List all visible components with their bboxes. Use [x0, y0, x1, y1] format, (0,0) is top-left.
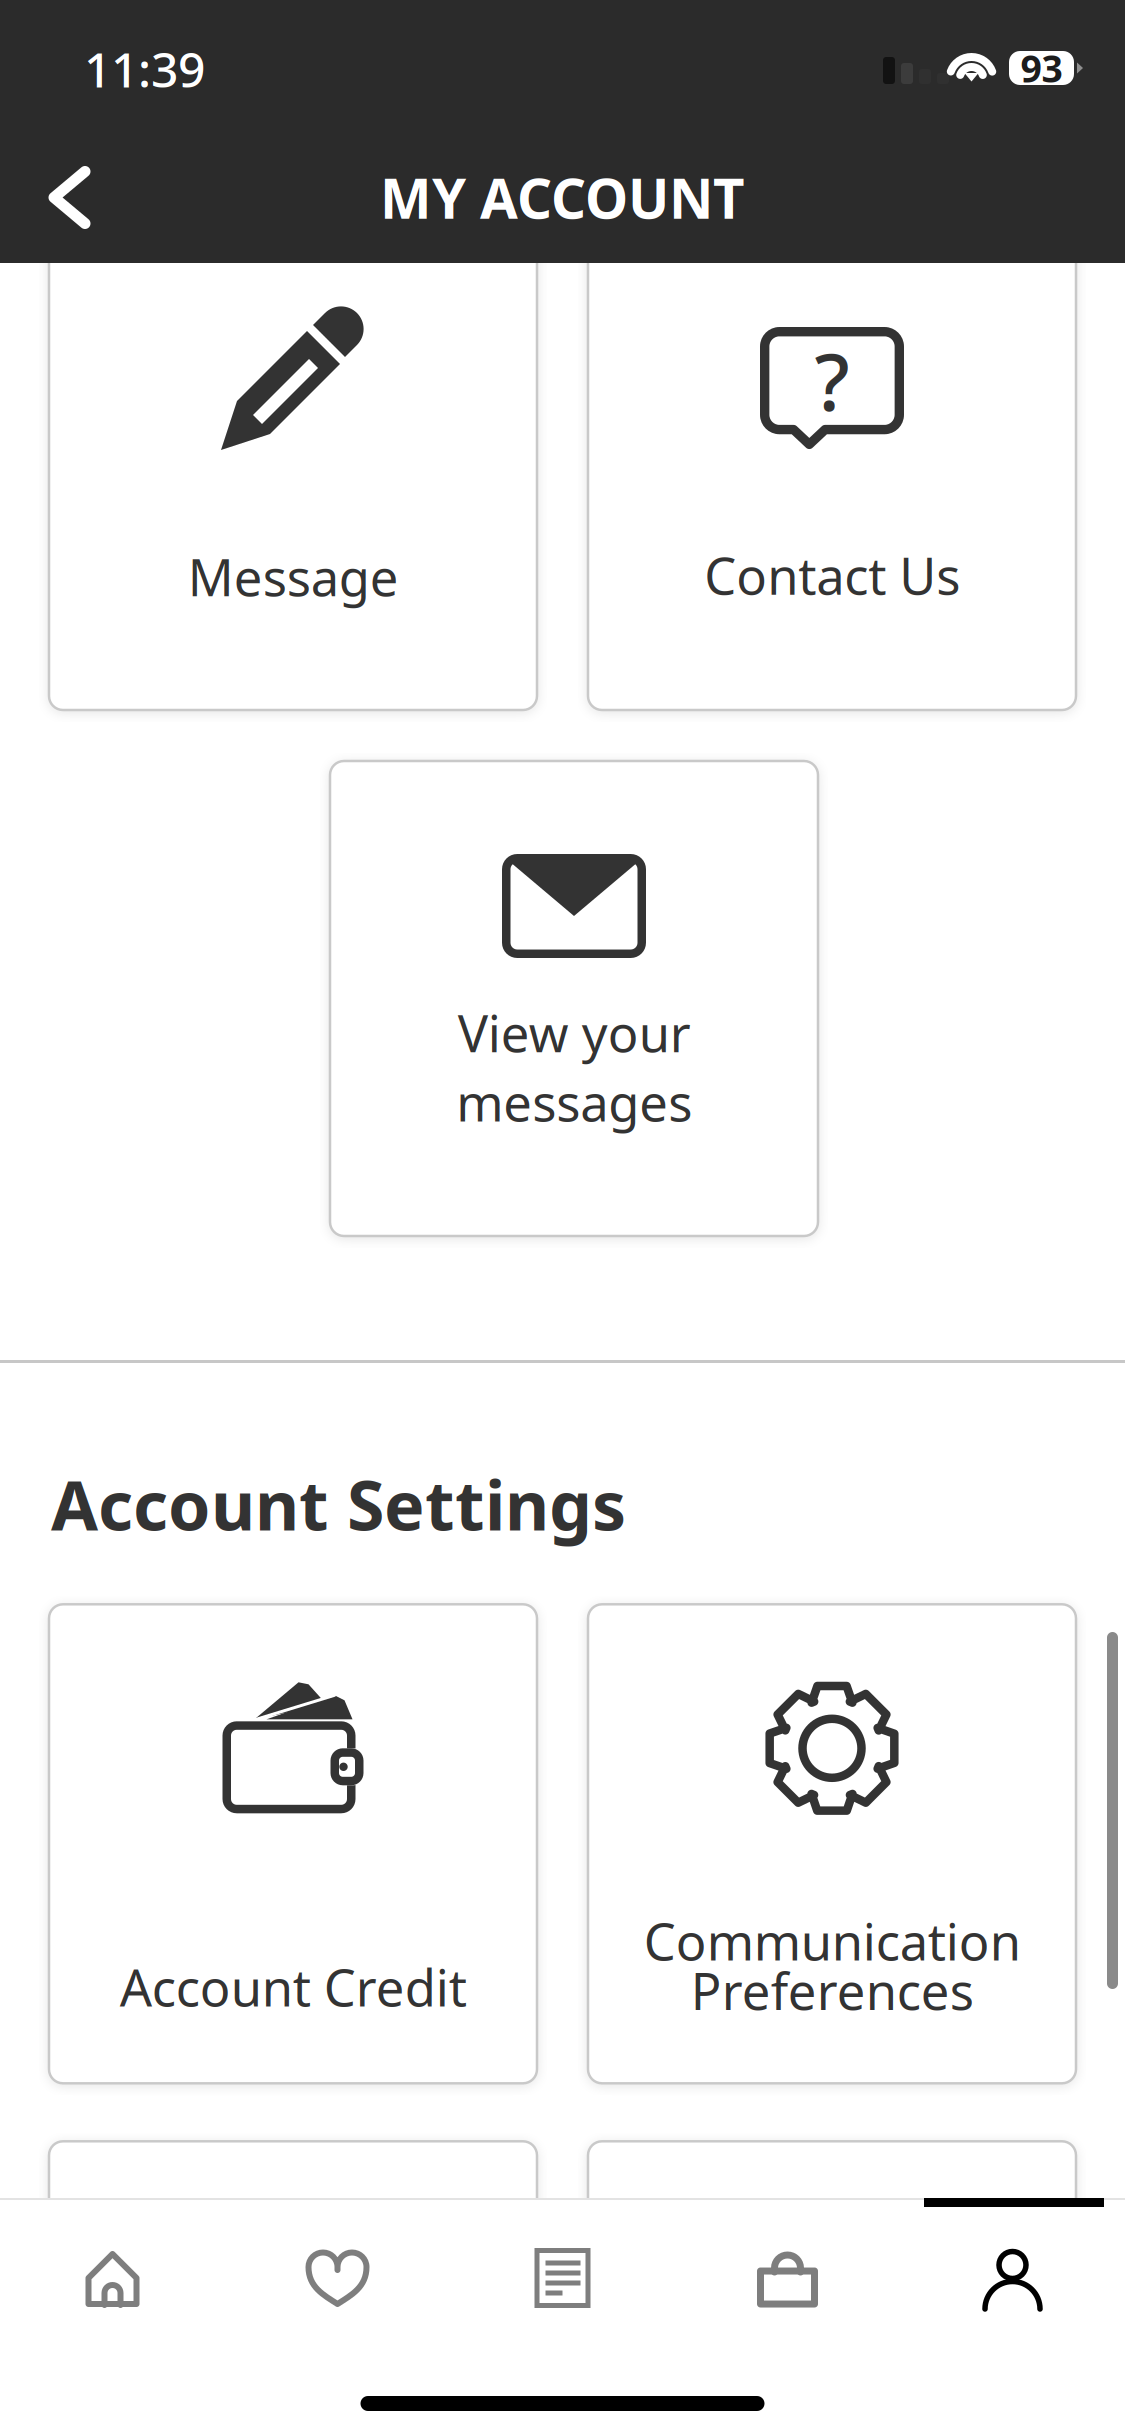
staticText: MY ACCOUNT — [380, 161, 745, 234]
button[interactable]: ? — [588, 231, 1076, 710]
staticText: 11:39 — [84, 37, 205, 101]
button[interactable] — [49, 2141, 537, 2436]
button[interactable]: Basket — [675, 2213, 900, 2343]
button[interactable]: Orders — [450, 2213, 675, 2343]
staticText: ? — [814, 328, 849, 432]
staticText: View your messages — [456, 999, 692, 1136]
button[interactable]: Account — [900, 2213, 1125, 2343]
button[interactable] — [588, 2141, 1076, 2436]
button[interactable]: Account Credit — [49, 1604, 537, 2083]
staticText: Communication Preferences — [643, 1907, 1020, 2024]
button[interactable]: Favourites — [225, 2213, 450, 2343]
staticText: Message — [187, 543, 398, 610]
staticText: Account Credit — [119, 1953, 466, 2021]
staticText: 93 — [1020, 43, 1062, 93]
button[interactable]: Home — [0, 2213, 225, 2343]
button[interactable]: View your messages — [330, 761, 818, 1236]
staticText: Account Settings — [51, 1459, 626, 1549]
button[interactable]: Message — [49, 231, 537, 710]
button[interactable]: Communication Preferences — [588, 1604, 1076, 2083]
button[interactable]: Back — [0, 132, 150, 263]
staticText: Contact Us — [704, 541, 960, 609]
